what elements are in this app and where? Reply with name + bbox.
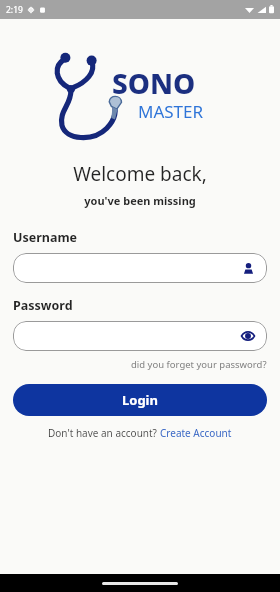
- button[interactable]: Username input: [13, 253, 267, 283]
- button[interactable]: Create Account: [160, 426, 232, 440]
- other: Password input: [240, 328, 256, 344]
- other: Username input: [240, 260, 256, 276]
- staticText: SONO: [112, 64, 196, 102]
- button[interactable]: did you forget your password?: [13, 357, 267, 372]
- staticText: MASTER: [138, 100, 204, 123]
- button[interactable]: Login: [13, 384, 267, 416]
- staticText: you've been missing: [0, 193, 280, 208]
- staticText: 2:19: [6, 4, 23, 16]
- staticText: Create Account: [160, 426, 232, 440]
- staticText: Welcome back,: [0, 161, 280, 187]
- staticText: Login: [122, 391, 158, 409]
- staticText: did you forget your password?: [131, 358, 267, 371]
- staticText: Username: [13, 229, 78, 246]
- staticText: Don't have an account?: [48, 426, 160, 440]
- button[interactable]: Password input: [13, 321, 267, 351]
- staticText: Password: [13, 297, 73, 314]
